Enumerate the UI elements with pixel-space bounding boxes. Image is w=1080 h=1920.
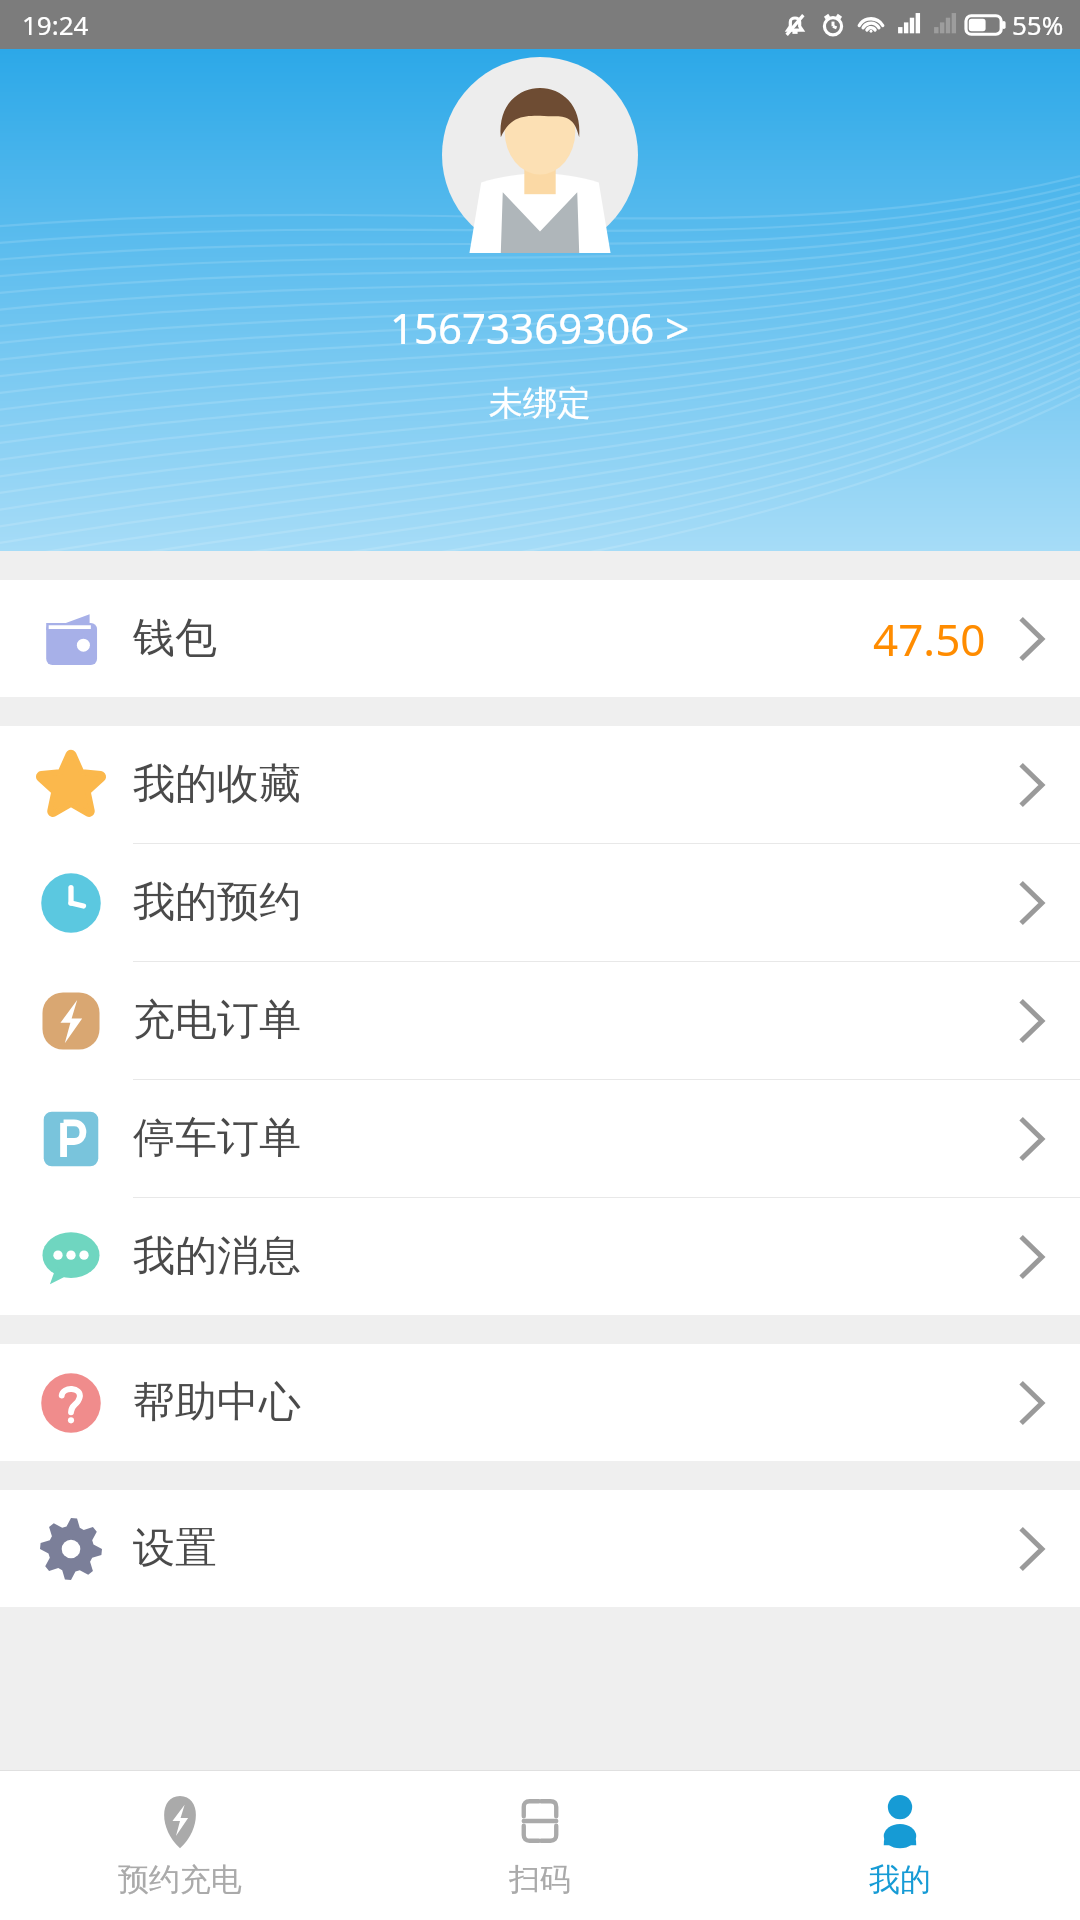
button[interactable]: 帮助中心	[0, 1344, 1080, 1461]
staticText: 47.50	[873, 609, 986, 669]
button[interactable]: 预约充电	[0, 1770, 360, 1920]
button[interactable]: 我的	[720, 1770, 1080, 1920]
staticText: 扫码	[509, 1860, 571, 1899]
staticText: 我的消息	[133, 1230, 301, 1283]
button[interactable]: 扫码	[360, 1770, 720, 1920]
staticText: 帮助中心	[133, 1376, 301, 1429]
button[interactable]: 我的收藏	[0, 726, 1080, 843]
button[interactable]: 钱包	[0, 580, 1080, 697]
button[interactable]: 15673369306 >	[382, 295, 698, 360]
staticText: 55%	[1012, 7, 1064, 42]
staticText: 我的收藏	[133, 758, 301, 811]
button[interactable]: 我的预约	[0, 844, 1080, 961]
button[interactable]: 充电订单	[0, 962, 1080, 1079]
staticText: 19:24	[22, 7, 89, 42]
button[interactable]: 设置	[0, 1490, 1080, 1607]
button[interactable]: 停车订单	[0, 1080, 1080, 1197]
staticText: 15673369306 >	[390, 299, 690, 356]
button[interactable]: 我的消息	[0, 1198, 1080, 1315]
staticText: 停车订单	[133, 1112, 301, 1165]
staticText: 我的预约	[133, 876, 301, 929]
staticText: 我的	[869, 1860, 931, 1899]
staticText: 钱包	[133, 612, 217, 665]
staticText: 预约充电	[118, 1860, 242, 1899]
staticText: 充电订单	[133, 994, 301, 1047]
staticText: 未绑定	[489, 382, 591, 425]
staticText: 设置	[133, 1522, 217, 1575]
